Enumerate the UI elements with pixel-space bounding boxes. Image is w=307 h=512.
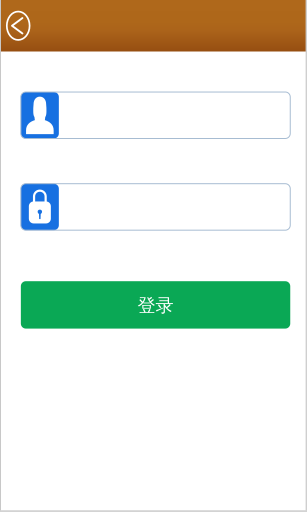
button[interactable]: Back [0, 0, 46, 51]
staticText: 登录 [137, 294, 173, 317]
button[interactable]: 登录 [21, 281, 290, 329]
